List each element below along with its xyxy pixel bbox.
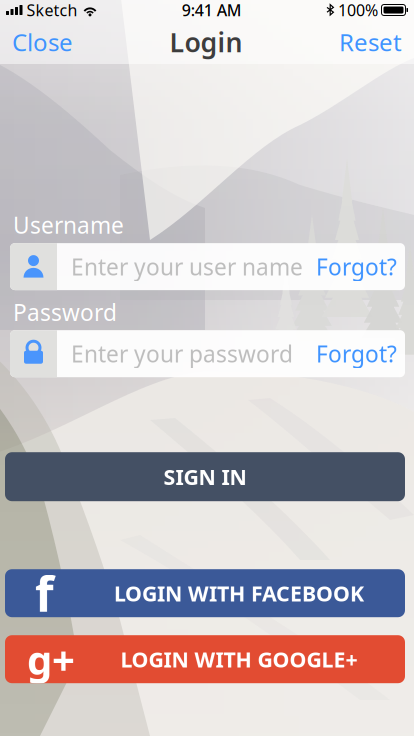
staticText: LOGIN WITH GOOGLE+ [120, 645, 357, 673]
staticText: Forgot? [316, 339, 397, 369]
staticText: Forgot? [316, 252, 397, 282]
staticText: SIGN IN [163, 462, 246, 491]
button[interactable]: LOGIN WITH FACEBOOK [5, 569, 405, 617]
staticText: Password [13, 297, 117, 327]
button[interactable]: Forgot? [316, 252, 405, 282]
staticText: g+ [27, 633, 75, 686]
staticText: Reset [339, 26, 402, 58]
staticText: LOGIN WITH FACEBOOK [114, 579, 364, 607]
button[interactable]: Close [0, 20, 85, 64]
button[interactable]: LOGIN WITH GOOGLE+ [5, 635, 405, 683]
staticText: f [35, 561, 54, 625]
staticText: Enter your password [71, 339, 293, 369]
button[interactable]: SIGN IN [5, 452, 405, 501]
staticText: Close [12, 26, 73, 58]
button[interactable]: Reset [327, 20, 414, 64]
button[interactable]: Forgot? [316, 339, 405, 369]
staticText: Sketch [26, 0, 77, 21]
staticText: Username [13, 210, 124, 240]
staticText: 9:41 AM [182, 0, 242, 21]
staticText: Enter your user name [71, 252, 303, 282]
staticText: Login [169, 24, 242, 60]
staticText: 100% [338, 0, 378, 21]
